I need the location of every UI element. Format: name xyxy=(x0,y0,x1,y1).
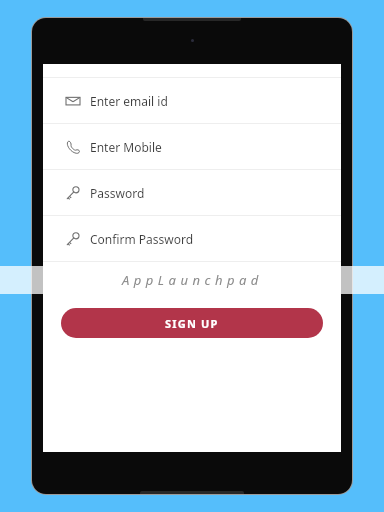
button[interactable]: SIGN UP xyxy=(61,308,323,338)
button[interactable]: Password xyxy=(43,216,341,261)
staticText: Enter email id xyxy=(90,93,168,109)
other: Phone xyxy=(66,140,80,154)
other: Password xyxy=(66,232,80,246)
staticText: AppLaunchpad xyxy=(122,271,263,289)
staticText: Password xyxy=(90,185,145,201)
staticText: Confirm Password xyxy=(90,231,194,247)
staticText: Enter Mobile xyxy=(90,139,162,155)
button[interactable]: Email xyxy=(43,78,341,123)
other: Email xyxy=(66,94,80,108)
button[interactable]: Password xyxy=(43,170,341,215)
staticText: SIGN UP xyxy=(165,316,219,331)
other: Password xyxy=(66,186,80,200)
button[interactable]: Phone xyxy=(43,124,341,169)
